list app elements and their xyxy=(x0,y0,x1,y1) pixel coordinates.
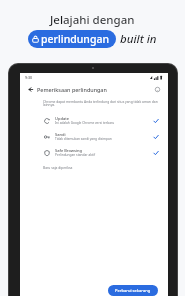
staticText: Perlindungan standar aktif xyxy=(55,153,95,157)
button[interactable]: Back xyxy=(25,84,35,94)
staticText: 9:30 xyxy=(25,75,33,80)
button[interactable]: Update xyxy=(20,116,168,125)
staticText: Safe Browsing xyxy=(55,148,83,153)
button[interactable]: Perbarui sekarang xyxy=(108,285,158,296)
staticText: Perbarui sekarang xyxy=(115,288,151,293)
staticText: Update xyxy=(55,116,70,121)
staticText: Tidak ditemukan sandi yang disimpan xyxy=(55,137,112,141)
staticText: Ini adalah Google Chrome versi terbaru xyxy=(55,121,115,125)
staticText: built in xyxy=(120,31,157,47)
staticText: Pemeriksaan perlindungan xyxy=(37,86,107,93)
button[interactable]: Sandi xyxy=(20,132,168,141)
staticText: Baru saja diperiksa xyxy=(43,165,73,169)
staticText: Jelajahi dengan xyxy=(50,12,135,28)
staticText: Chrome dapat membantu Anda terlindung da… xyxy=(43,99,160,107)
button[interactable]: Safe Browsing xyxy=(20,148,168,157)
staticText: perlindungan xyxy=(41,32,110,46)
staticText: Sandi xyxy=(55,132,66,137)
button[interactable]: Help xyxy=(152,84,162,94)
